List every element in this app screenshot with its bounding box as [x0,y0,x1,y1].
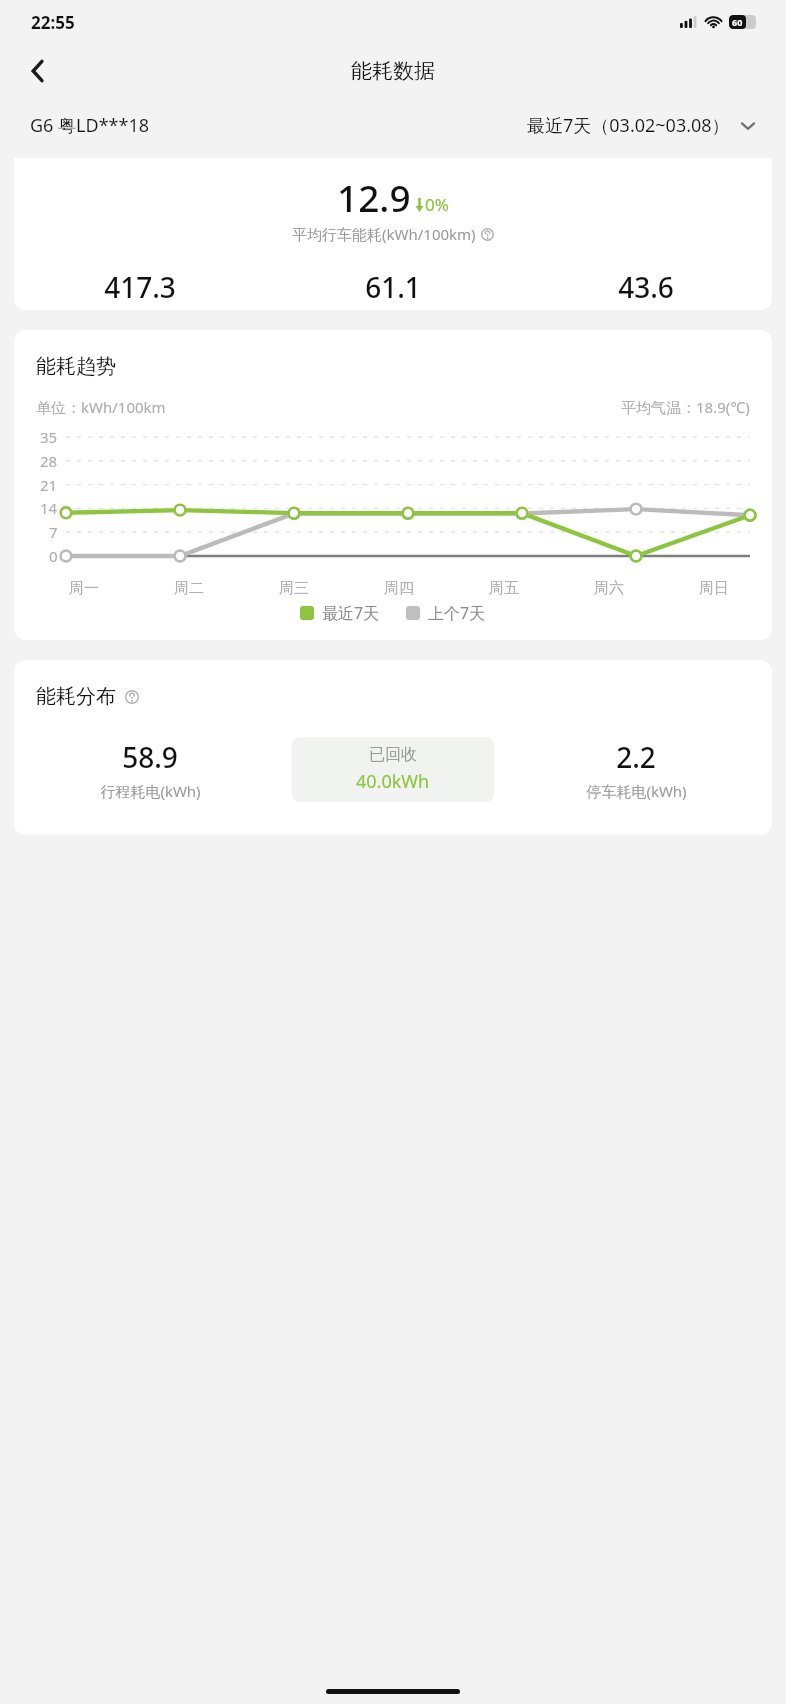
staticText: 周四 [384,579,414,598]
button[interactable]: 上个7天 [406,602,486,624]
button[interactable]: 最近7天（03.02~03.08） [527,113,756,138]
staticText: 40.0kWh [356,769,430,794]
staticText: 平均行车能耗(kWh/100km) [292,224,476,244]
staticText: 行程耗电(kWh) [100,781,201,801]
staticText: 单位：kWh/100km [36,397,166,417]
staticText: 周三 [279,579,309,598]
staticText: 61.1 [365,268,421,306]
staticText: 60 [732,16,743,28]
staticText: 43.6 [618,268,674,306]
staticText: 14 [40,498,58,518]
staticText: 0% [425,193,449,216]
staticText: 平均气温：18.9(℃) [621,397,750,417]
staticText: 已回收 [369,745,417,765]
staticText: 能耗数据 [351,58,435,84]
staticText: 35 [40,427,58,447]
staticText: 最近7天（03.02~03.08） [527,113,730,138]
staticText: 最近7天 [322,602,380,624]
staticText: 周五 [489,579,519,598]
staticText: G6 粤LD***18 [30,113,149,138]
staticText: 周日 [699,579,729,598]
staticText: 能耗趋势 [36,354,116,379]
staticText: 上个7天 [428,602,486,624]
staticText: 停车耗电(kWh) [586,781,687,801]
staticText: 周二 [174,579,204,598]
staticText: 21 [40,475,58,495]
button[interactable]: Back [12,45,64,97]
staticText: 能耗分布 [36,684,116,709]
staticText: 417.3 [104,268,176,306]
staticText: 22:55 [31,11,75,34]
button[interactable]: 最近7天 [300,602,380,624]
staticText: 周六 [594,579,624,598]
staticText: 7 [49,522,58,542]
staticText: 28 [40,451,58,471]
staticText: 2.2 [616,738,656,776]
staticText: 周一 [69,579,99,598]
staticText: 0 [49,546,58,566]
button[interactable]: G6 粤LD***18 [30,113,149,138]
staticText: 12.9 [337,172,411,222]
staticText: 58.9 [122,738,178,776]
